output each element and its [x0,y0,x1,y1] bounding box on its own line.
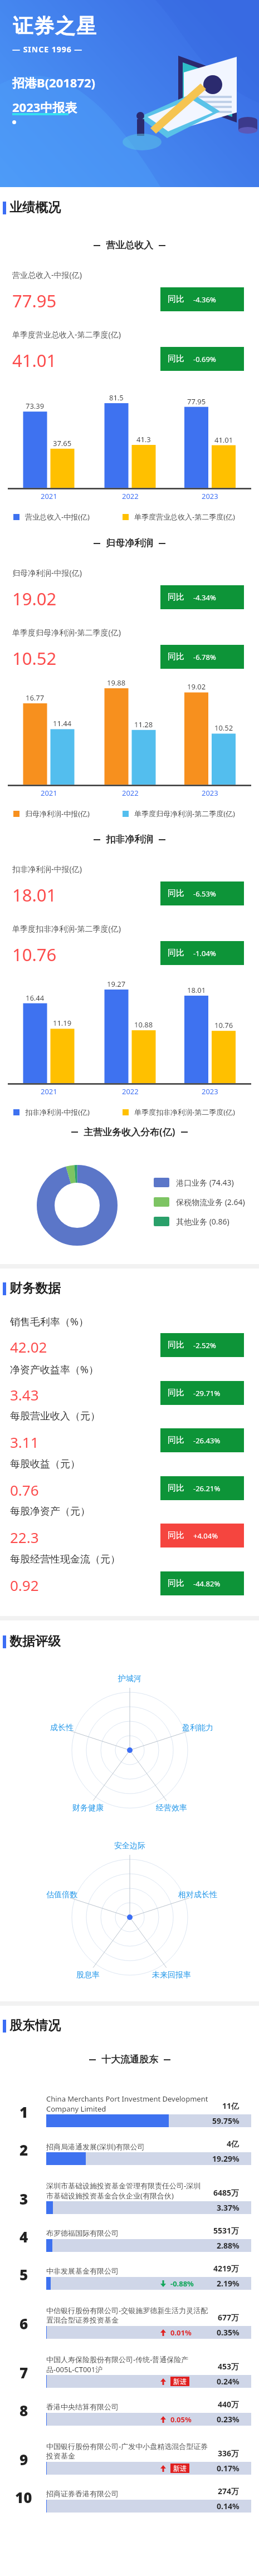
staticText: 营业总收入-中报(亿) [12,270,82,280]
staticText: 0.05% [170,2415,192,2425]
staticText: 42.02 [10,1337,47,1356]
button[interactable]: 0.14% [46,2500,251,2513]
staticText: 10.52 [12,647,57,670]
button[interactable]: 同比 [160,1524,244,1547]
staticText: 单季度归母净利润-第二季度(亿) [12,627,121,638]
staticText: 10.52 [214,723,233,733]
staticText: 2023中报表 [12,99,77,115]
staticText: 成长性 [50,1723,74,1733]
staticText: 业绩概况 [9,199,61,216]
button[interactable]: 同比 [160,1381,244,1405]
staticText: 19.88 [107,678,126,688]
staticText: 中国银行股份有限公司-广发中小盘精选混合型证券 [46,2441,208,2451]
staticText: China Merchants Port Investment Developm… [46,2094,208,2104]
button[interactable]: 新进 [46,2462,251,2475]
button[interactable]: 19.29% [46,2152,251,2165]
staticText: 18.01 [12,883,57,907]
staticText: 0.01% [170,2328,192,2338]
staticText: 37.65 [53,438,72,448]
staticText: 2023 [202,1086,218,1096]
staticText: 未来回报率 [152,1970,191,1980]
staticText: Company Limited [46,2104,106,2114]
staticText: 2021 [41,788,57,798]
button[interactable]: 3.37% [46,2201,251,2214]
staticText: 经营效率 [156,1803,187,1813]
staticText: 2022 [122,1086,139,1096]
staticText: 护城河 [118,1674,141,1684]
button[interactable]: 同比 [160,1571,244,1595]
staticText: 单季度扣非净利润-第二季度(亿) [134,1107,235,1117]
staticText: 16.77 [26,693,45,703]
staticText: -2.52% [193,1340,216,1350]
staticText: 2.19% [217,2278,240,2289]
button[interactable]: 同比 [160,585,244,609]
staticText: 10.76 [214,1020,233,1030]
staticText: 41.01 [214,435,233,445]
button[interactable]: 0.01% [46,2326,251,2339]
button[interactable]: 同比 [160,347,244,371]
staticText: 3.43 [10,1385,39,1404]
staticText: 单季度营业总收入-第二季度(亿) [12,329,121,340]
staticText: 77.95 [12,289,57,312]
staticText: 单季度营业总收入-第二季度(亿) [134,512,235,522]
staticText: 2022 [122,788,139,798]
staticText: 招商局港通发展(深圳)有限公司 [46,2142,145,2152]
staticText: 股息率 [76,1970,100,1980]
staticText: 布罗德福国际有限公司 [46,2229,119,2237]
staticText: 投资基金 [46,2451,75,2460]
staticText: 2023 [202,788,218,798]
staticText: 81.5 [109,393,124,403]
staticText: 安全边际 [114,1841,145,1851]
button[interactable]: 59.75% [46,2114,251,2127]
button[interactable]: 同比 [160,645,244,669]
staticText: 深圳市基础设施投资基金管理有限责任公司-深圳 [46,2181,201,2191]
staticText: -0.69% [193,354,216,364]
staticText: 3.11 [10,1432,39,1452]
button[interactable]: 2.88% [46,2239,251,2252]
staticText: 扣非净利润-中报(亿) [25,1107,90,1117]
staticText: 5 [19,2265,28,2284]
staticText: 10.88 [134,1020,153,1030]
button[interactable]: 同比 [160,287,244,311]
staticText: 每股收益（元） [10,1458,80,1471]
staticText: 同比 [168,888,184,899]
staticText: 11.19 [53,1018,72,1028]
button[interactable]: 新进 [46,2375,251,2388]
button[interactable]: 同比 [160,1428,244,1452]
staticText: 10 [15,2487,32,2507]
staticText: 0.35% [217,2327,240,2338]
button[interactable]: 同比 [160,1333,244,1357]
button[interactable]: 同比 [160,881,244,905]
staticText: 每股经营性现金流（元） [10,1553,120,1566]
button[interactable]: -0.88% [46,2277,251,2290]
staticText: 新进 [173,2377,187,2386]
staticText: 每股营业收入（元） [10,1410,100,1423]
staticText: 19.02 [187,682,206,692]
staticText: 主营业务收入分布(亿) [84,1125,175,1138]
staticText: 274万 [218,2486,240,2496]
staticText: 22.3 [10,1527,39,1547]
staticText: 归母净利润-中报(亿) [25,809,90,819]
staticText: 18.01 [187,985,206,995]
staticText: 扣非净利润 [106,834,153,845]
button[interactable]: 同比 [160,1476,244,1500]
staticText: 0.23% [217,2414,240,2425]
staticText: 2.88% [217,2240,240,2251]
staticText: 招商证券香港有限公司 [46,2489,119,2498]
staticText: 4219万 [213,2263,240,2274]
staticText: 同比 [168,1388,184,1398]
staticText: 销售毛利率（%） [10,1315,89,1329]
staticText: 其他业务 (0.86) [176,1216,229,1227]
button[interactable]: 同比 [160,941,244,965]
staticText: 10.76 [12,943,57,966]
staticText: 同比 [168,948,184,958]
staticText: 9 [19,2450,28,2469]
staticText: 6 [19,2314,28,2333]
staticText: 中非发展基金有限公司 [46,2266,119,2275]
staticText: 8 [19,2401,28,2420]
staticText: 0.14% [217,2501,240,2511]
staticText: 16.44 [26,993,45,1003]
button[interactable]: 0.05% [46,2413,251,2426]
staticText: 估值倍数 [46,1890,77,1900]
staticText: 财务健康 [72,1803,104,1813]
